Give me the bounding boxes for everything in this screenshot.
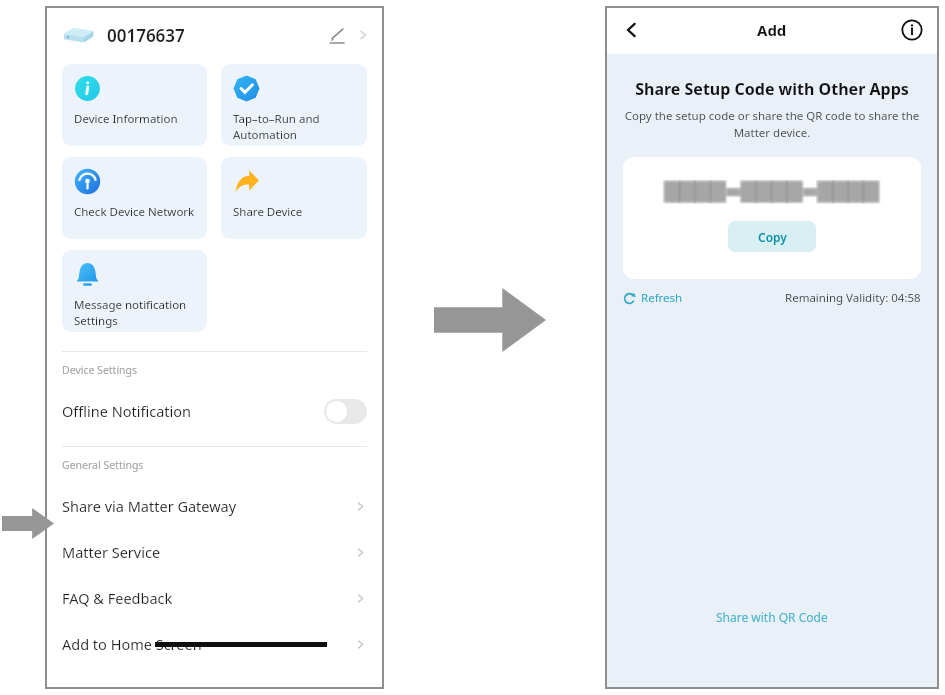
staticText: Tap–to–Run and Automation (233, 111, 320, 142)
staticText: Add to Home Screen (62, 634, 202, 654)
staticText: Share via Matter Gateway (62, 496, 237, 516)
staticText: General Settings (62, 458, 144, 472)
button[interactable]: Tap–to–Run and Automation (221, 64, 367, 146)
button[interactable]: 00176637 (45, 6, 384, 64)
staticText: Matter Service (62, 542, 161, 562)
staticText: 00176637 (107, 24, 185, 47)
button[interactable]: Offline Notification (45, 388, 384, 434)
button[interactable]: Back (621, 19, 643, 41)
button[interactable]: Edit name (326, 25, 347, 46)
staticText: Check Device Network (74, 204, 195, 220)
staticText: Share Setup Code with Other Apps (605, 78, 939, 100)
staticText: Copy the setup code or share the QR code… (617, 108, 927, 140)
staticText: FAQ & Feedback (62, 588, 173, 608)
button[interactable]: Info (901, 19, 923, 41)
button[interactable]: Refresh (623, 290, 683, 306)
button[interactable]: FAQ & Feedback (45, 575, 384, 621)
staticText: Offline Notification (62, 401, 191, 421)
staticText: Refresh (641, 290, 683, 306)
button[interactable]: Message notification Settings (62, 250, 207, 332)
button[interactable]: Copy (728, 221, 816, 252)
staticText: Share with QR Code (716, 609, 828, 625)
staticText: Remaining Validity: 04:58 (785, 290, 921, 306)
button[interactable]: Share Device (221, 157, 367, 239)
button[interactable]: Add to Home Screen (45, 621, 384, 667)
staticText: Device Information (74, 111, 178, 127)
staticText: Copy (758, 229, 787, 245)
button[interactable]: Matter Service (45, 529, 384, 575)
button[interactable]: Share with QR Code (702, 603, 842, 631)
button[interactable]: Device Information (62, 64, 207, 146)
button[interactable]: Check Device Network (62, 157, 207, 239)
staticText: Share Device (233, 204, 303, 220)
staticText: Add (757, 20, 787, 40)
staticText: Message notification Settings (74, 297, 187, 328)
staticText: Device Settings (62, 363, 138, 377)
button[interactable]: Share via Matter Gateway (45, 483, 384, 529)
